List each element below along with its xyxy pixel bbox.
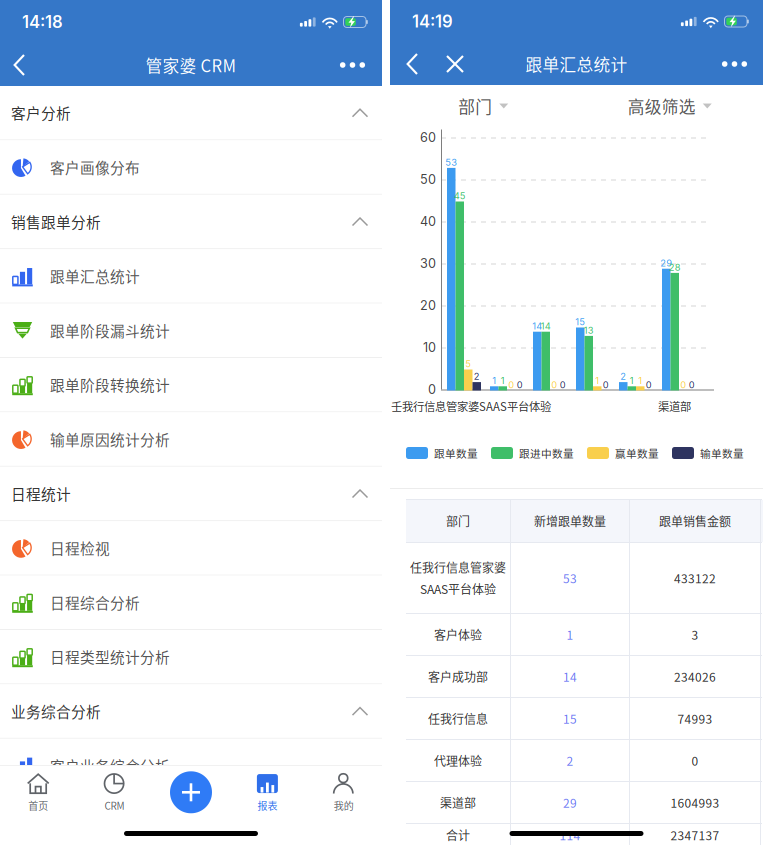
staticText: 部门 <box>446 512 470 530</box>
staticText: 跟单销售金额 <box>659 512 731 530</box>
staticText: 30 <box>420 256 436 271</box>
staticText: 高级筛选 <box>628 94 696 118</box>
staticText: 部门 <box>458 94 492 118</box>
staticText: 15 <box>575 316 585 327</box>
button[interactable]: 高级筛选 <box>628 87 712 125</box>
staticText: 客户业务综合分析 <box>50 755 170 776</box>
staticText: 1 <box>630 375 634 386</box>
staticText: 首页 <box>28 798 48 813</box>
staticText: 跟单汇总统计 <box>50 265 140 286</box>
staticText: 跟单阶段转换统计 <box>50 374 170 395</box>
staticText: 日程检视 <box>50 537 110 558</box>
staticText: 40 <box>420 214 436 229</box>
staticText: 29 <box>563 794 577 811</box>
staticText: 代理体验 <box>434 752 482 769</box>
staticText: 合计 <box>446 826 470 844</box>
button[interactable]: 客户业务综合分析 <box>0 739 382 792</box>
staticText: 14:19 <box>412 11 453 32</box>
staticText: 1 <box>566 626 573 643</box>
staticText: 0 <box>603 379 609 390</box>
staticText: CRM <box>105 798 125 813</box>
button[interactable]: 客户画像分布 <box>0 140 382 194</box>
button[interactable]: 首页 <box>0 767 76 817</box>
staticText: 渠道部 <box>440 794 476 811</box>
staticText: 0 <box>691 752 698 769</box>
staticText: 0 <box>428 382 436 397</box>
staticText: 0 <box>551 379 557 390</box>
staticText: 0 <box>689 379 695 390</box>
staticText: 管家婆 CRM <box>145 53 236 77</box>
button[interactable]: 输单原因统计分析 <box>0 412 382 466</box>
staticText: 销售跟单分析 <box>11 211 101 232</box>
staticText: SAAS平台体验 <box>420 580 496 597</box>
staticText: 1 <box>595 375 599 386</box>
staticText: 日程综合分析 <box>50 592 140 613</box>
staticText: 433122 <box>674 569 716 587</box>
button[interactable]: Add <box>153 767 229 817</box>
button[interactable]: More <box>322 44 382 86</box>
staticText: 50 <box>420 172 436 187</box>
staticText: 1 <box>501 375 505 386</box>
staticText: 5 <box>465 358 471 369</box>
staticText: 20 <box>420 298 436 313</box>
staticText: 渠道部 <box>658 398 691 414</box>
button[interactable]: 日程类型统计分析 <box>0 630 382 683</box>
button[interactable]: More <box>673 43 763 85</box>
button[interactable]: 部门 <box>458 87 508 125</box>
staticText: 28 <box>669 262 681 273</box>
staticText: 2 <box>474 371 480 382</box>
staticText: 跟单阶段漏斗统计 <box>50 320 170 341</box>
staticText: 53 <box>445 157 457 168</box>
button[interactable]: 业务综合分析 <box>0 684 382 738</box>
staticText: 客户成功部 <box>428 668 488 685</box>
staticText: 14 <box>563 668 577 685</box>
staticText: 3 <box>691 626 698 643</box>
button[interactable]: 我的 <box>306 767 382 817</box>
button[interactable]: 日程综合分析 <box>0 576 382 629</box>
staticText: 45 <box>454 190 466 201</box>
button[interactable]: 跟单阶段转换统计 <box>0 358 382 411</box>
staticText: 跟单汇总统计 <box>525 52 627 76</box>
button[interactable]: 销售跟单分析 <box>0 195 382 248</box>
button[interactable]: Back <box>0 44 60 86</box>
staticText: 0 <box>517 379 523 390</box>
staticText: 53 <box>563 569 577 587</box>
staticText: 赢单数量 <box>615 445 659 461</box>
staticText: 客户画像分布 <box>50 156 140 178</box>
staticText: 10 <box>423 340 436 355</box>
staticText: 14 <box>541 320 551 332</box>
staticText: 14:18 <box>22 12 63 32</box>
staticText: 业务综合分析 <box>11 700 101 722</box>
button[interactable]: 日程统计 <box>0 467 382 520</box>
staticText: 输单数量 <box>700 445 744 461</box>
button[interactable]: CRM <box>76 767 153 817</box>
staticText: 114 <box>559 826 580 844</box>
button[interactable]: Back <box>390 43 436 85</box>
staticText: 60 <box>420 130 436 145</box>
staticText: 29 <box>660 257 672 269</box>
staticText: 跟单数量 <box>434 445 478 461</box>
staticText: 1 <box>492 375 496 386</box>
staticText: 任我行信息 <box>428 710 488 727</box>
staticText: 跟进中数量 <box>519 445 574 461</box>
staticText: 15 <box>563 710 577 727</box>
staticText: 日程类型统计分析 <box>50 646 170 667</box>
staticText: 234026 <box>674 668 716 685</box>
button[interactable]: Close <box>436 43 480 85</box>
staticText: 任我行信息管家婆 <box>410 559 506 576</box>
staticText: 输单原因统计分析 <box>50 428 170 450</box>
staticText: 壬我行信息管家婆SAAS平台体验 <box>391 398 551 414</box>
staticText: 14 <box>532 320 542 332</box>
button[interactable]: 日程检视 <box>0 521 382 575</box>
button[interactable]: 跟单阶段漏斗统计 <box>0 304 382 357</box>
staticText: 0 <box>646 379 652 390</box>
staticText: 0 <box>560 379 566 390</box>
button[interactable]: 报表 <box>229 767 306 817</box>
staticText: 客户体验 <box>434 626 482 643</box>
staticText: 2 <box>620 371 626 382</box>
staticText: 我的 <box>334 798 354 813</box>
staticText: 13 <box>584 325 594 336</box>
button[interactable]: 客户分析 <box>0 86 382 139</box>
button[interactable]: 跟单汇总统计 <box>0 249 382 303</box>
staticText: 1 <box>638 375 642 386</box>
